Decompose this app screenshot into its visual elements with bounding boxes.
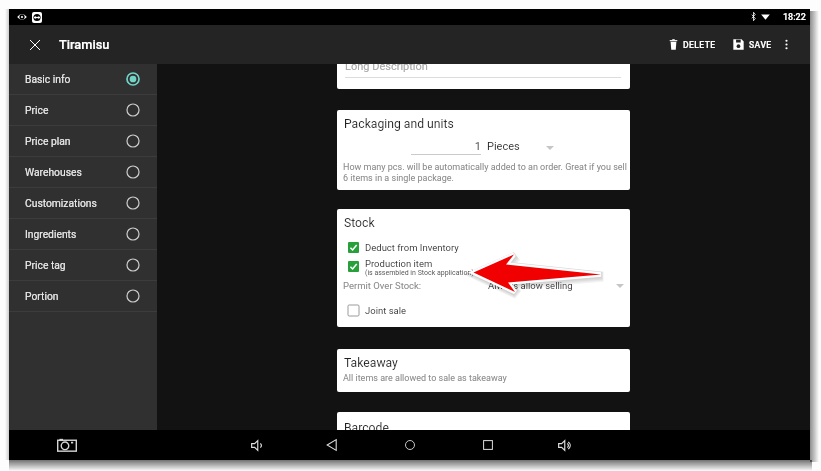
staticText: Price plan bbox=[25, 135, 71, 147]
button[interactable]: Packaging and units bbox=[337, 110, 630, 190]
button[interactable]: Screenshot bbox=[49, 430, 85, 460]
button[interactable]: Takeaway bbox=[337, 349, 630, 392]
button[interactable]: Barcode bbox=[337, 412, 630, 430]
staticText: Portion bbox=[25, 290, 59, 302]
staticText: All items are allowed to sale as takeawa… bbox=[343, 373, 507, 384]
staticText: 1 bbox=[411, 140, 481, 153]
button[interactable]: Back bbox=[316, 430, 348, 460]
button[interactable]: Volume up bbox=[548, 430, 580, 460]
button[interactable]: SAVE bbox=[726, 31, 779, 58]
staticText: Warehouses bbox=[25, 166, 82, 178]
staticText: 6 items in a single package. bbox=[343, 173, 454, 184]
staticText: DELETE bbox=[683, 40, 716, 50]
button[interactable]: Basic info bbox=[9, 64, 157, 94]
staticText: Price bbox=[25, 104, 49, 116]
button[interactable]: Price bbox=[9, 95, 157, 125]
staticText: (is assembled in Stock application) bbox=[365, 269, 474, 277]
staticText: Joint sale bbox=[365, 305, 407, 316]
button[interactable]: Price tag bbox=[9, 250, 157, 280]
staticText: Barcode bbox=[344, 421, 389, 430]
staticText: Stock bbox=[344, 216, 375, 230]
button[interactable]: Ingredients bbox=[9, 219, 157, 249]
button[interactable]: Long Description bbox=[337, 64, 630, 89]
staticText: Price tag bbox=[25, 259, 66, 271]
staticText: Long Description bbox=[345, 64, 428, 73]
button[interactable]: Permit over stock bbox=[488, 278, 624, 294]
staticText: Permit Over Stock: bbox=[343, 280, 422, 291]
staticText: Basic info bbox=[25, 73, 71, 85]
staticText: Packaging and units bbox=[344, 117, 454, 131]
staticText: Production item bbox=[365, 258, 433, 269]
button[interactable]: Warehouses bbox=[9, 157, 157, 187]
button[interactable]: Price plan bbox=[9, 126, 157, 156]
staticText: Ingredients bbox=[25, 228, 77, 240]
staticText: Takeaway bbox=[344, 356, 398, 370]
button[interactable]: Joint sale bbox=[337, 302, 630, 319]
button[interactable]: More options bbox=[773, 31, 799, 57]
staticText: Always allow selling bbox=[488, 280, 573, 291]
staticText: 18:22 bbox=[783, 12, 806, 23]
staticText: Deduct from Inventory bbox=[365, 242, 459, 253]
button[interactable]: Production item bbox=[337, 258, 537, 281]
button[interactable]: Portion bbox=[9, 281, 157, 311]
button[interactable]: Customizations bbox=[9, 188, 157, 218]
button[interactable]: Volume down bbox=[241, 430, 273, 460]
staticText: How many pcs. will be automatically adde… bbox=[343, 162, 627, 173]
staticText: Customizations bbox=[25, 197, 97, 209]
staticText: SAVE bbox=[749, 40, 772, 50]
button[interactable]: Deduct from Inventory bbox=[337, 239, 630, 256]
button[interactable]: Recents bbox=[472, 430, 504, 460]
staticText: Tiramisu bbox=[59, 37, 110, 52]
button[interactable]: DELETE bbox=[662, 31, 723, 58]
staticText: Pieces bbox=[487, 140, 520, 153]
button[interactable]: Home bbox=[394, 430, 426, 460]
button[interactable]: Close bbox=[18, 28, 51, 61]
